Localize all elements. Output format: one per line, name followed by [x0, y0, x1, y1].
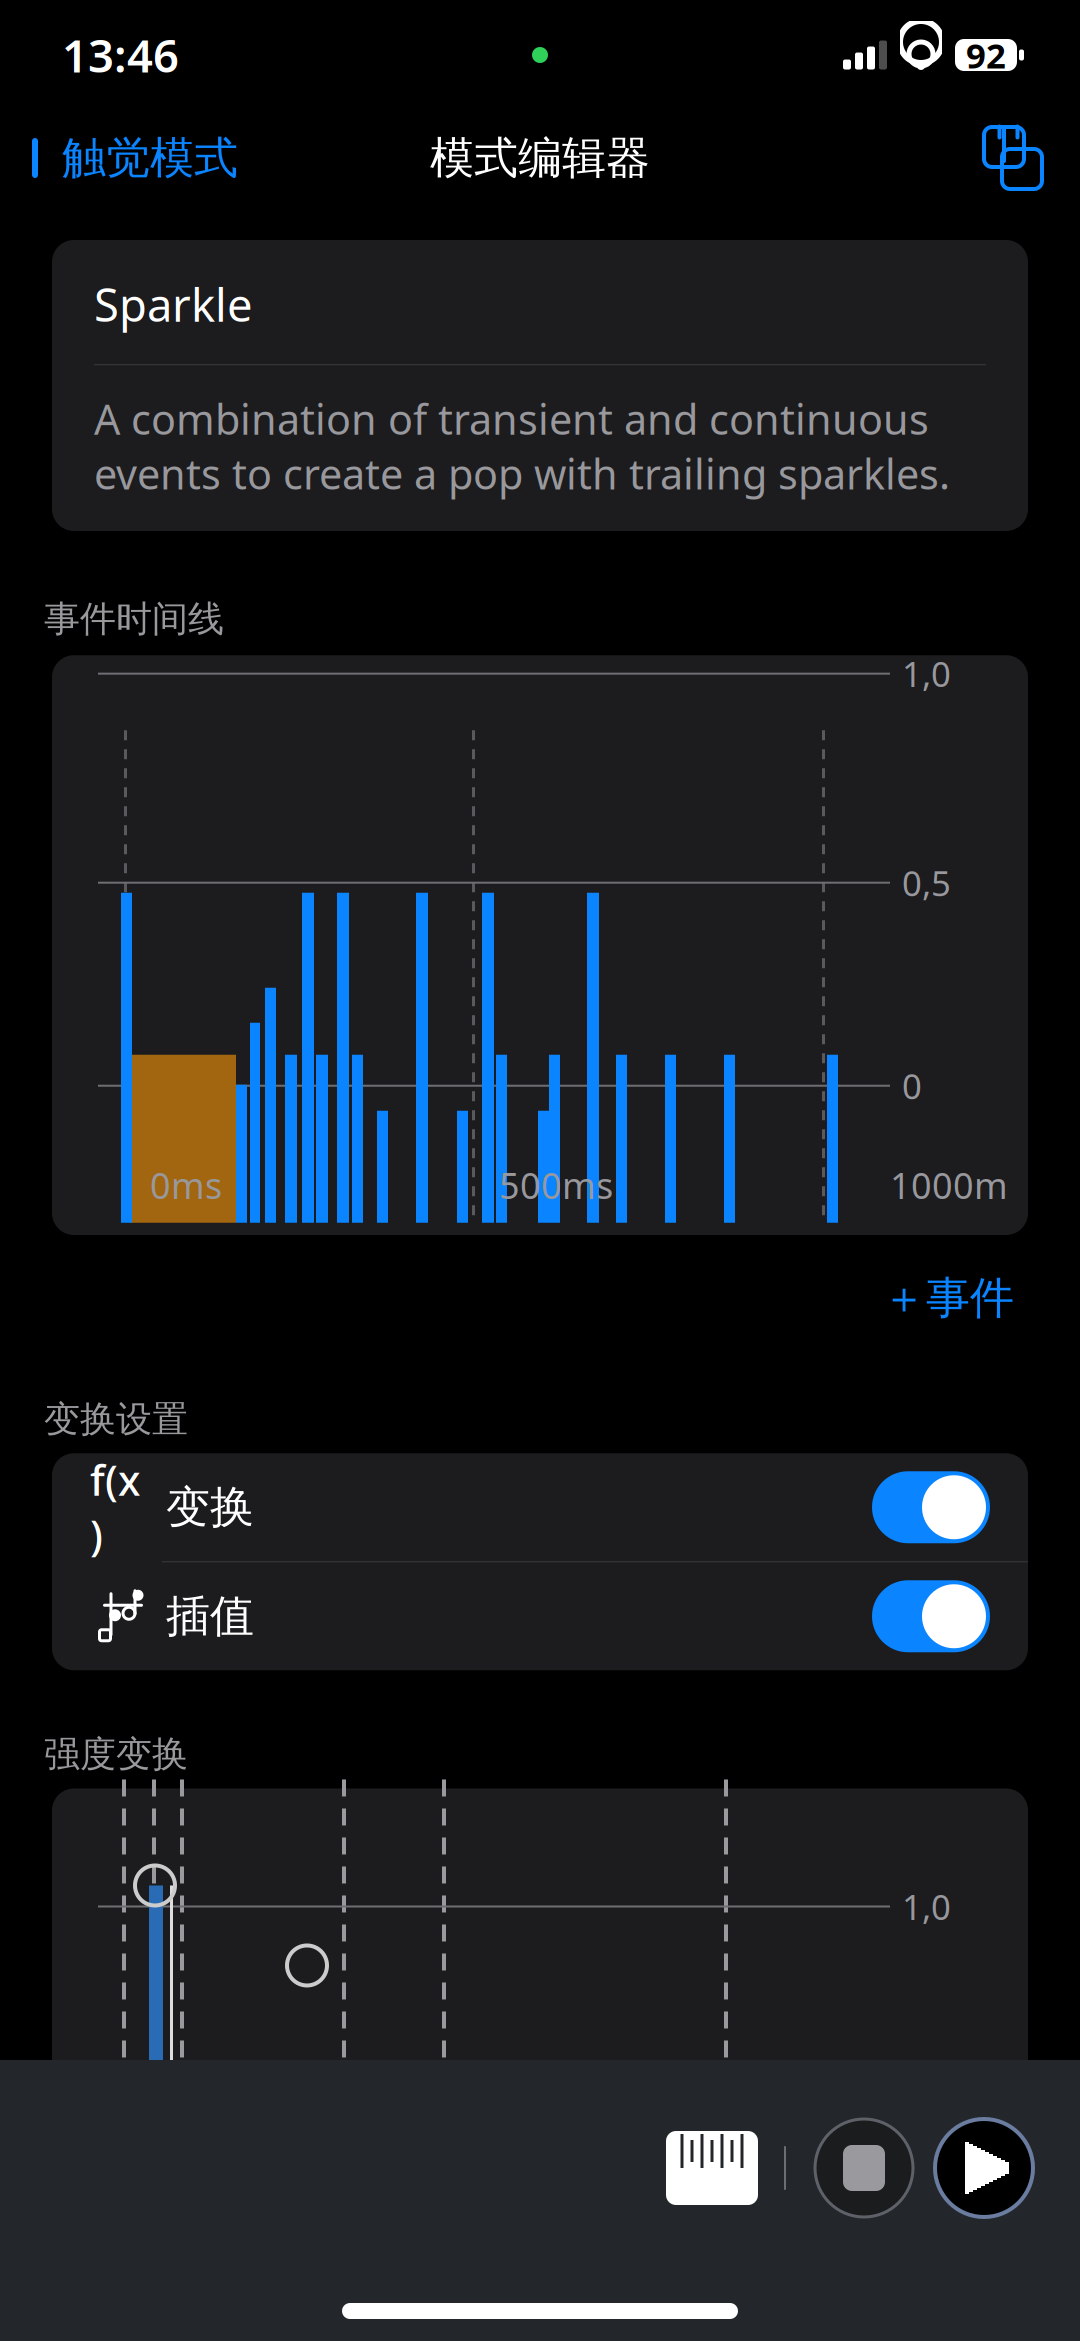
staticText: 1,0 — [902, 651, 951, 697]
staticText: 0 — [902, 1063, 922, 1109]
staticText: 92 — [966, 32, 1006, 78]
staticText: 0,5 — [902, 860, 951, 906]
button[interactable]: 插值 — [52, 1562, 1028, 1670]
staticText: 事件时间线 — [44, 597, 224, 641]
button[interactable]: ＋事件 — [882, 1261, 1014, 1335]
staticText: 13:46 — [62, 25, 179, 85]
button[interactable]: f(x) — [52, 1453, 1028, 1561]
button[interactable]: 停止 — [812, 2116, 916, 2220]
staticText: 模式编辑器 — [430, 131, 650, 185]
staticText: 1000m — [890, 1161, 1008, 1209]
staticText: 变换设置 — [44, 1397, 188, 1441]
staticText: f(x) — [90, 1452, 140, 1562]
staticText: ＋事件 — [882, 1271, 1014, 1325]
staticText: 500ms — [499, 1161, 613, 1209]
staticText: 触觉模式 — [62, 131, 238, 185]
staticText: 1,0 — [902, 1883, 951, 1929]
button[interactable]: 播放 — [932, 2116, 1036, 2220]
staticText: Sparkle — [94, 274, 253, 334]
staticText: 0ms — [150, 1161, 222, 1209]
button[interactable]: 分享 — [982, 113, 1080, 203]
staticText: 插值 — [166, 1589, 254, 1643]
button[interactable]: 触觉模式 — [0, 121, 238, 195]
staticText: 变换 — [166, 1480, 254, 1534]
button[interactable]: 标尺 — [666, 2131, 758, 2205]
staticText: A combination of transient and continuou… — [94, 391, 950, 501]
staticText: 强度变换 — [44, 1732, 188, 1776]
